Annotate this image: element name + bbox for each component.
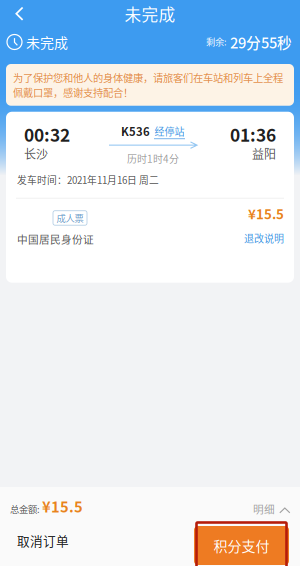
staticText: 取消订单 [17, 531, 69, 550]
button[interactable]: 取消订单 [0, 528, 69, 563]
button[interactable]: 明细 [253, 501, 291, 517]
staticText: 剩余: [206, 35, 227, 48]
button[interactable]: 积分支付 [194, 522, 300, 566]
staticText: 01:36 [230, 122, 276, 147]
staticText: 中国居民身份证 [17, 231, 94, 247]
staticText: 成人票 [56, 211, 83, 225]
staticText: 退改说明 [244, 231, 284, 245]
staticText: 积分支付 [213, 535, 269, 556]
staticText: ¥15.5 [42, 495, 83, 517]
staticText: 明细 [253, 501, 275, 517]
staticText: 未完成 [124, 2, 175, 26]
staticText: 经停站 [154, 124, 184, 138]
staticText: 总金额: [10, 502, 40, 516]
staticText: 为了保护您和他人的身体健康，请旅客们在车站和列车上全程佩戴口罩，感谢支持配合！ [13, 70, 283, 100]
staticText: 00:32 [24, 122, 70, 147]
staticText: 历时1时4分 [127, 151, 179, 166]
staticText: 益阳 [252, 145, 276, 162]
staticText: 未完成 [26, 32, 68, 52]
staticText: K536 [121, 123, 150, 139]
button[interactable]: 经停站 [154, 124, 185, 139]
staticText: ¥15.5 [248, 204, 284, 223]
staticText: 29分55秒 [230, 31, 292, 53]
button[interactable]: 退改说明 [244, 223, 284, 245]
button[interactable]: 返回 [0, 0, 37, 28]
staticText: 长沙 [24, 145, 48, 162]
staticText: 发车时间：2021年11月16日 周二 [17, 173, 159, 187]
